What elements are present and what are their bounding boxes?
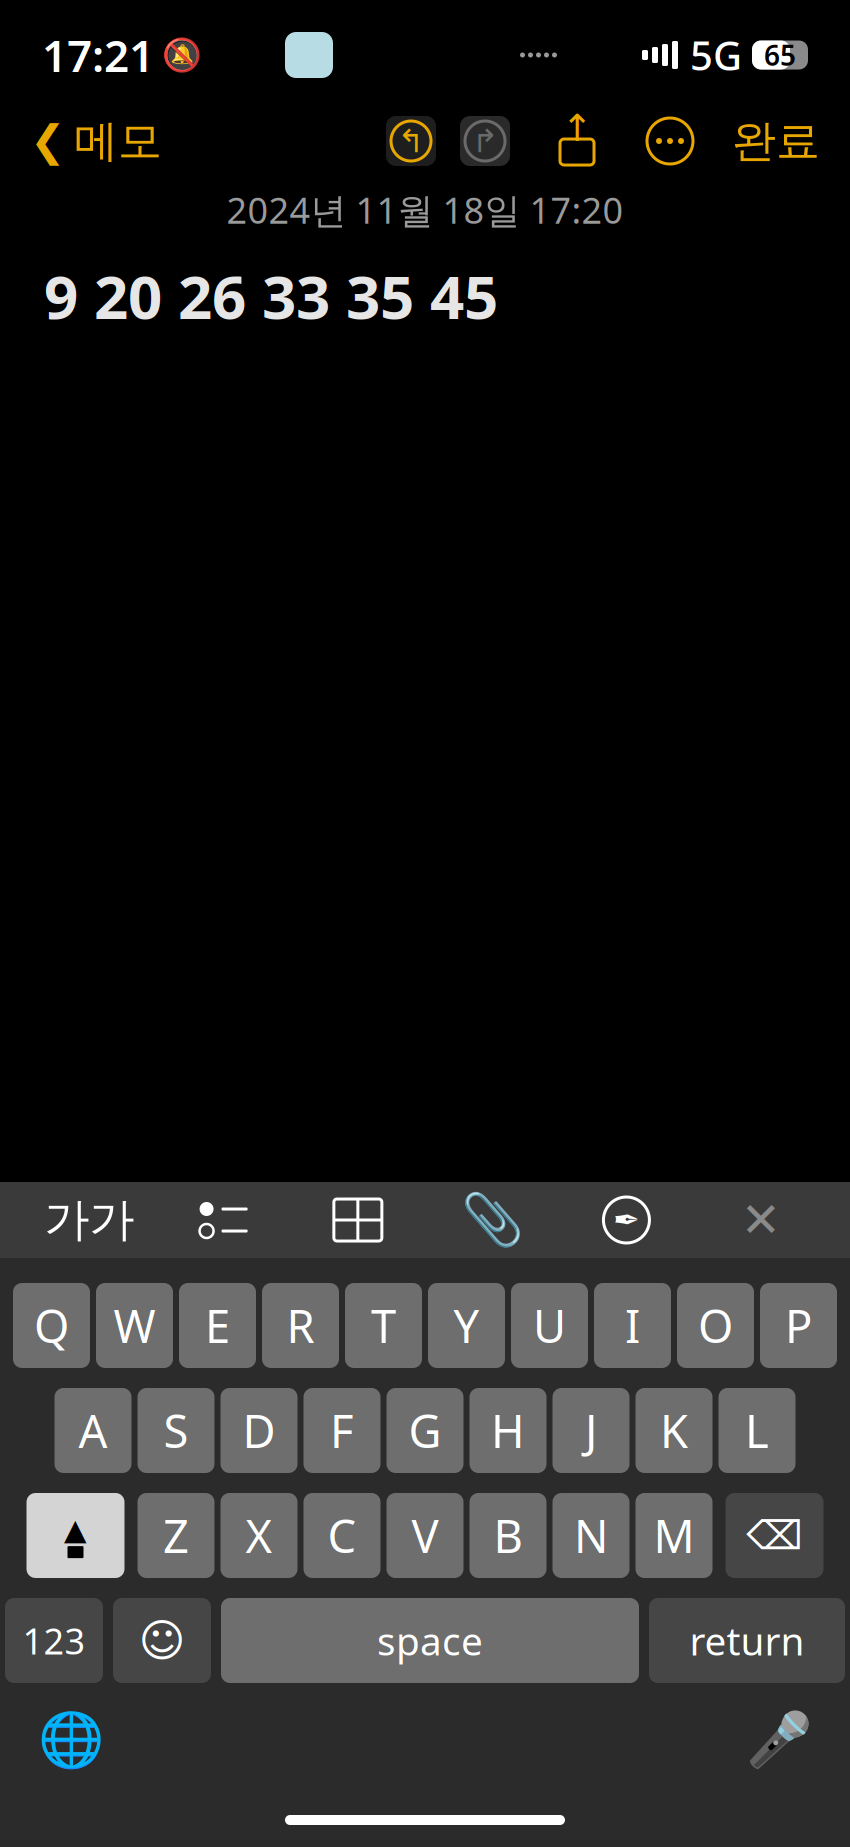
button[interactable]: C <box>303 1493 380 1578</box>
staticText: ▲ <box>64 1513 87 1546</box>
staticText: G <box>408 1400 441 1461</box>
button[interactable]: Checklist <box>179 1189 269 1251</box>
staticText: 🎤 <box>746 1709 812 1770</box>
staticText: ↰ <box>397 123 424 159</box>
button[interactable]: Z <box>137 1493 214 1578</box>
staticText: Y <box>453 1295 479 1356</box>
staticText: 완료 <box>732 114 820 168</box>
staticText: 메모 <box>74 114 162 168</box>
staticText: C <box>327 1505 356 1566</box>
button[interactable]: L <box>718 1388 795 1473</box>
staticText: 65 <box>764 36 796 74</box>
staticText: 🔕 <box>162 37 202 73</box>
staticText: 123 <box>22 1617 85 1664</box>
staticText: P <box>785 1295 812 1356</box>
button[interactable]: G <box>386 1388 463 1473</box>
button[interactable]: space <box>221 1598 639 1683</box>
button[interactable]: Emoji <box>113 1598 211 1683</box>
button[interactable]: D <box>220 1388 297 1473</box>
staticText: Q <box>34 1295 69 1356</box>
staticText: ☺ <box>138 1615 185 1666</box>
button[interactable]: Change keyboard <box>36 1705 106 1775</box>
staticText: 5G <box>690 28 742 81</box>
staticText: X <box>245 1505 272 1566</box>
button[interactable]: M <box>635 1493 712 1578</box>
staticText: 2024년 11월 18일 17:20 <box>226 186 623 234</box>
staticText: A <box>78 1400 107 1461</box>
button[interactable]: V <box>386 1493 463 1578</box>
button[interactable]: ❮ <box>24 108 168 174</box>
button[interactable]: U <box>511 1283 588 1368</box>
button[interactable]: 완료 <box>726 108 826 174</box>
staticText: K <box>660 1400 688 1461</box>
staticText: F <box>330 1400 354 1461</box>
staticText: S <box>163 1400 188 1461</box>
staticText: O <box>698 1295 733 1356</box>
button[interactable]: X <box>220 1493 297 1578</box>
button[interactable]: Close keyboard <box>716 1189 806 1251</box>
button[interactable]: Q <box>13 1283 90 1368</box>
button[interactable]: P <box>760 1283 837 1368</box>
button[interactable]: K <box>635 1388 712 1473</box>
staticText: ✕ <box>741 1193 781 1247</box>
staticText: V <box>411 1505 438 1566</box>
staticText: W <box>113 1295 155 1356</box>
button[interactable]: A <box>54 1388 131 1473</box>
staticText: space <box>377 1615 483 1666</box>
button[interactable]: S <box>137 1388 214 1473</box>
button[interactable]: T <box>345 1283 422 1368</box>
staticText: 가가 <box>44 1192 134 1248</box>
button[interactable]: Attach <box>447 1189 537 1251</box>
staticText: 🌐 <box>38 1709 104 1770</box>
staticText: N <box>574 1505 608 1566</box>
staticText: 17:21 <box>42 26 154 84</box>
button[interactable]: Redo <box>460 116 510 166</box>
staticText: ↱ <box>471 123 498 159</box>
staticText: E <box>205 1295 230 1356</box>
staticText: H <box>491 1400 525 1461</box>
staticText: M <box>653 1505 694 1566</box>
button[interactable]: Share <box>552 115 602 167</box>
staticText: ↑ <box>561 107 592 149</box>
button[interactable]: F <box>303 1388 380 1473</box>
button[interactable]: 123 <box>5 1598 103 1683</box>
button[interactable]: O <box>677 1283 754 1368</box>
button[interactable]: J <box>552 1388 629 1473</box>
staticText: T <box>371 1295 396 1356</box>
staticText: R <box>286 1295 314 1356</box>
staticText: J <box>585 1400 597 1461</box>
button[interactable]: Table <box>313 1189 403 1251</box>
button[interactable]: Markup <box>581 1189 671 1251</box>
staticText: ✒ <box>613 1202 640 1238</box>
staticText: U <box>533 1295 566 1356</box>
button[interactable]: I <box>594 1283 671 1368</box>
staticText: B <box>493 1505 522 1566</box>
button[interactable]: Dictate <box>744 1705 814 1775</box>
staticText: 9 20 26 33 35 45 <box>44 256 498 335</box>
button[interactable]: Undo <box>386 116 436 166</box>
button[interactable]: R <box>262 1283 339 1368</box>
button[interactable]: return <box>649 1598 845 1683</box>
staticText: D <box>242 1400 275 1461</box>
button[interactable]: H <box>469 1388 546 1473</box>
button[interactable]: N <box>552 1493 629 1578</box>
button[interactable]: W <box>96 1283 173 1368</box>
staticText: L <box>745 1400 769 1461</box>
staticText: I <box>625 1295 640 1356</box>
button[interactable]: E <box>179 1283 256 1368</box>
staticText: ❮ <box>30 117 66 165</box>
button[interactable]: Format <box>44 1189 134 1251</box>
staticText: 📎 <box>461 1191 524 1249</box>
staticText: ⌫ <box>746 1513 803 1558</box>
button[interactable]: Y <box>428 1283 505 1368</box>
button[interactable]: B <box>469 1493 546 1578</box>
button[interactable]: Shift <box>26 1493 124 1578</box>
staticText: Z <box>163 1505 189 1566</box>
button[interactable]: More <box>644 115 696 167</box>
staticText: return <box>689 1615 804 1666</box>
button[interactable]: Delete <box>725 1493 823 1578</box>
